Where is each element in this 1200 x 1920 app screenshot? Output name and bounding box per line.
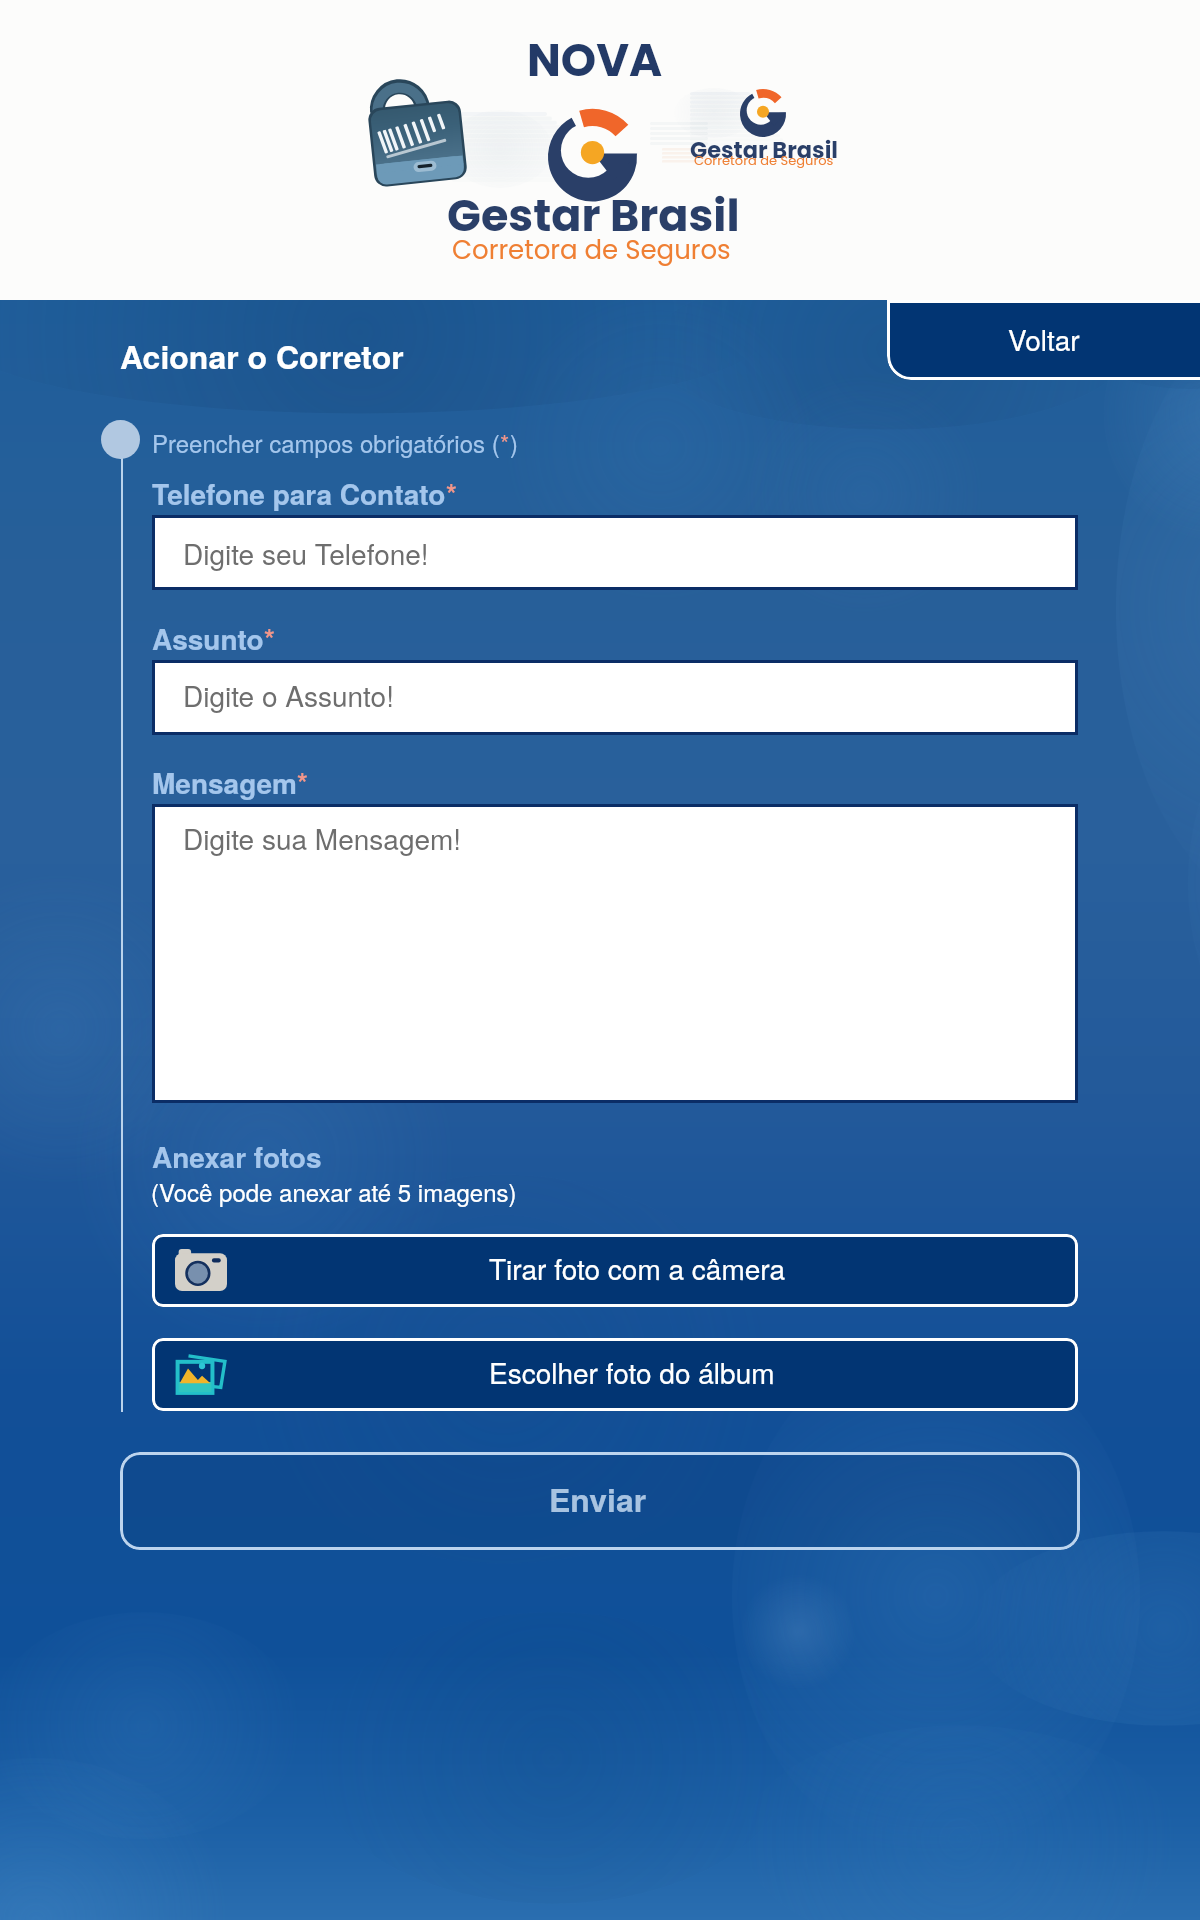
staticText: Enviar (549, 1476, 647, 1522)
staticText: * (446, 473, 457, 513)
staticText: Corretora de Seguros (452, 232, 731, 268)
button[interactable]: Voltar (887, 300, 1200, 380)
staticText: ) (510, 425, 518, 459)
staticText: * (264, 618, 275, 658)
staticText: Anexar fotos (152, 1136, 322, 1176)
staticText: Gestar Brasil (690, 134, 838, 165)
staticText: Acionar o Corretor (120, 333, 404, 379)
staticText: Assunto (152, 618, 264, 658)
staticText: Telefone para Contato (152, 473, 446, 513)
staticText: Gestar Brasil (447, 184, 740, 246)
button[interactable]: Escolher foto do álbum (152, 1338, 1078, 1411)
button[interactable]: Digite seu Telefone! (152, 515, 1078, 590)
button[interactable]: Digite o Assunto! (152, 660, 1078, 735)
staticText: Corretora de Seguros (694, 151, 834, 169)
staticText: * (500, 425, 510, 459)
staticText: Digite seu Telefone! (183, 533, 429, 573)
staticText: Escolher foto do álbum (489, 1352, 775, 1392)
staticText: Digite sua Mensagem! (183, 818, 462, 858)
button[interactable]: Digite sua Mensagem! (152, 804, 1078, 1103)
staticText: Digite o Assunto! (183, 675, 394, 715)
button[interactable]: Tirar foto com a câmera (152, 1234, 1078, 1307)
button[interactable]: Enviar (120, 1452, 1080, 1550)
staticText: Tirar foto com a câmera (489, 1248, 786, 1288)
other: Tirar foto com a câmera (175, 1249, 227, 1291)
staticText: * (297, 762, 308, 802)
staticText: NOVA (527, 29, 663, 92)
staticText: (Você pode anexar até 5 imagens) (151, 1174, 517, 1208)
staticText: Preencher campos obrigatórios ( (152, 425, 500, 459)
staticText: Voltar (1008, 319, 1080, 359)
staticText: Mensagem (152, 762, 297, 802)
other: Escolher foto do álbum (175, 1353, 227, 1395)
